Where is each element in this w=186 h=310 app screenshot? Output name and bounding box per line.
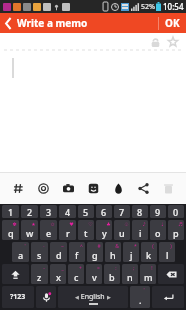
button[interactable]: (: [141, 242, 157, 262]
button[interactable]: Delete: [158, 178, 178, 198]
staticText: OK: [165, 16, 180, 30]
staticText: 5: [83, 206, 89, 218]
button[interactable]: 7: [114, 205, 130, 218]
staticText: English: [79, 292, 107, 302]
staticText: m: [144, 271, 153, 283]
button[interactable]: +: [68, 264, 84, 284]
staticText: 3: [46, 206, 52, 218]
staticText: x: [56, 271, 61, 283]
staticText: 1: [8, 206, 14, 218]
button[interactable]: Hashtag: [8, 178, 28, 198]
staticText: !: [151, 265, 153, 272]
button[interactable]: OK: [158, 13, 186, 33]
staticText: ♬: [178, 221, 183, 227]
staticText: ': [143, 287, 145, 294]
staticText: (: [152, 243, 154, 250]
button[interactable]: ♪: [132, 220, 148, 240]
button[interactable]: -: [31, 264, 48, 284]
button[interactable]: Shift: [2, 264, 29, 284]
button[interactable]: ✽: [2, 220, 19, 240]
staticText: n: [127, 271, 133, 283]
staticText: ?123: [10, 292, 26, 302]
staticText: ♩: [161, 221, 164, 227]
staticText: ✽: [12, 221, 17, 227]
staticText: +: [79, 265, 82, 272]
staticText: ♪: [142, 221, 146, 227]
button[interactable]: Enter: [152, 286, 184, 308]
button[interactable]: ♬: [168, 220, 184, 240]
button[interactable]: ·: [31, 242, 48, 262]
button[interactable]: 8: [132, 205, 148, 218]
button[interactable]: Favorite: [166, 35, 180, 49]
button[interactable]: Mention: [33, 178, 53, 198]
button[interactable]: 4: [59, 205, 76, 218]
staticText: 8: [137, 206, 143, 218]
staticText: t: [84, 227, 88, 239]
button[interactable]: !: [140, 264, 156, 284]
button[interactable]: ♣: [96, 220, 112, 240]
button[interactable]: 5: [78, 205, 94, 218]
button[interactable]: ♡: [78, 220, 94, 240]
button[interactable]: ': [12, 242, 29, 262]
button[interactable]: ^: [69, 242, 85, 262]
button[interactable]: Share: [133, 178, 153, 198]
staticText: &: [115, 243, 119, 250]
button[interactable]: 6: [96, 205, 112, 218]
staticText: ♡: [88, 221, 93, 227]
button[interactable]: Ink: [108, 178, 128, 198]
staticText: 7: [119, 206, 125, 218]
staticText: .: [139, 294, 142, 306]
staticText: =: [97, 265, 100, 272]
button[interactable]: ♧: [114, 220, 130, 240]
staticText: ): [170, 243, 172, 250]
staticText: c: [74, 271, 79, 283]
staticText: ♥: [69, 221, 74, 227]
button[interactable]: :: [104, 264, 120, 284]
button[interactable]: &: [105, 242, 121, 262]
button[interactable]: ✩: [40, 220, 57, 240]
button[interactable]: ': [130, 286, 150, 308]
button[interactable]: Camera: [58, 178, 78, 198]
staticText: k: [146, 249, 152, 261]
button[interactable]: 3: [40, 205, 57, 218]
button[interactable]: 0: [168, 205, 184, 218]
staticText: ◀: [75, 294, 79, 300]
staticText: i: [139, 227, 142, 239]
button[interactable]: ★: [21, 220, 38, 240]
button[interactable]: ;: [122, 264, 138, 284]
staticText: 9: [155, 206, 161, 218]
staticText: d: [56, 249, 62, 261]
button[interactable]: 1: [2, 205, 19, 218]
staticText: _: [61, 265, 64, 272]
staticText: h: [110, 249, 116, 261]
button[interactable]: #: [87, 242, 103, 262]
button[interactable]: ): [159, 242, 175, 262]
staticText: ▶: [107, 294, 111, 300]
staticText: ★: [31, 221, 36, 227]
button[interactable]: Voice input: [36, 286, 56, 308]
button[interactable]: Backspace: [158, 264, 184, 284]
button[interactable]: ?123: [2, 286, 34, 308]
staticText: w: [26, 227, 34, 239]
button[interactable]: Emoji: [83, 178, 103, 198]
staticText: g: [92, 249, 98, 261]
staticText: :: [115, 265, 117, 272]
staticText: 10:54: [163, 1, 184, 12]
button[interactable]: =: [86, 264, 102, 284]
staticText: 2: [27, 206, 33, 218]
button[interactable]: 2: [21, 205, 38, 218]
button[interactable]: ~: [50, 242, 67, 262]
staticText: z: [37, 271, 42, 283]
button[interactable]: ◀: [58, 286, 128, 308]
staticText: a: [18, 249, 24, 261]
staticText: q: [8, 227, 14, 239]
staticText: f: [75, 249, 79, 261]
button[interactable]: *: [123, 242, 139, 262]
button[interactable]: Back: [0, 13, 16, 33]
button[interactable]: Lock: [148, 35, 162, 49]
button[interactable]: ♥: [59, 220, 76, 240]
button[interactable]: 9: [150, 205, 166, 218]
button[interactable]: _: [50, 264, 66, 284]
button[interactable]: ♩: [150, 220, 166, 240]
